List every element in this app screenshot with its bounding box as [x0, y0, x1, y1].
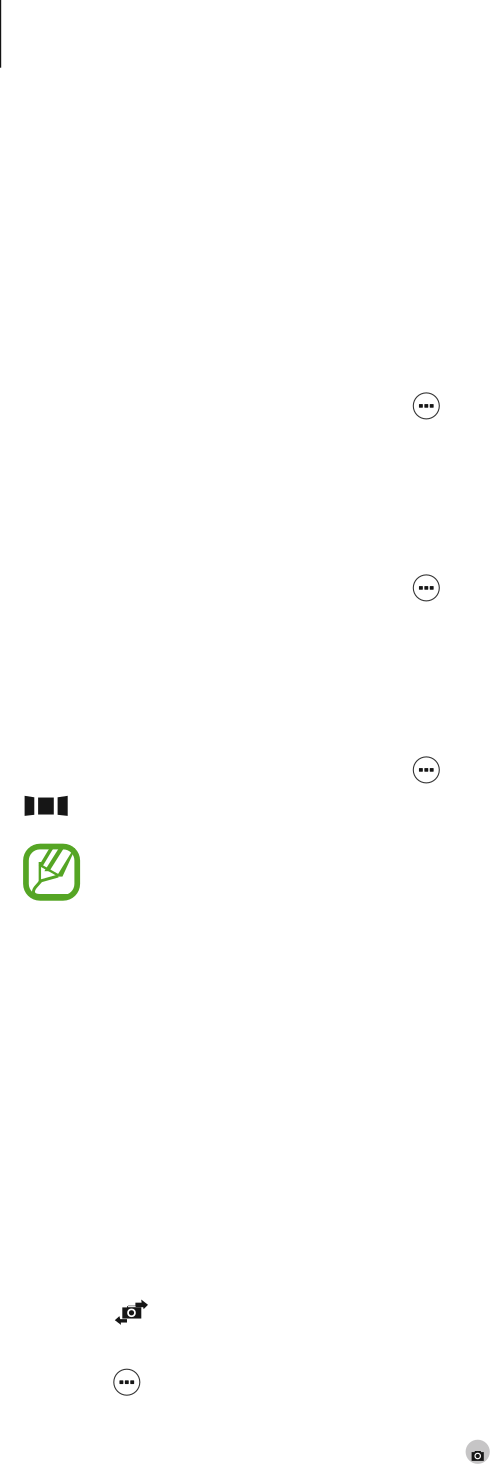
button[interactable]: Switch camera — [115, 1299, 148, 1325]
button[interactable]: Show image — [413, 757, 439, 783]
button[interactable]: Show image — [413, 575, 439, 601]
button[interactable]: Take photo — [466, 1440, 490, 1464]
button[interactable]: Show image — [413, 393, 439, 419]
button[interactable]: S Note — [23, 844, 80, 901]
button[interactable]: Show image — [114, 1369, 140, 1395]
